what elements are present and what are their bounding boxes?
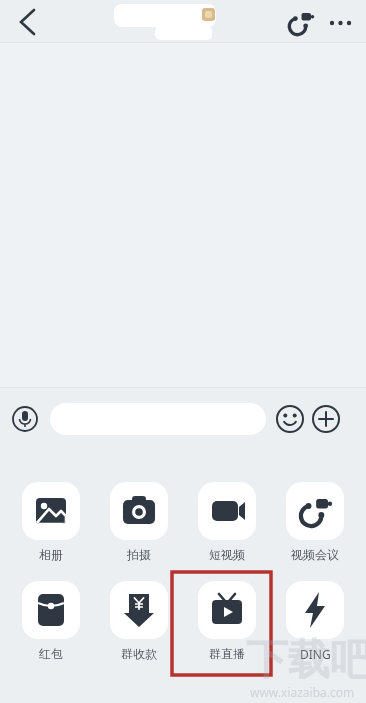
button[interactable] (286, 581, 344, 639)
staticText: 拍摄 (127, 547, 151, 562)
button[interactable]: 群直播 (198, 646, 256, 661)
staticText: 群收款 (121, 646, 157, 661)
staticText: DING (300, 646, 331, 662)
button[interactable] (286, 482, 344, 540)
button[interactable] (284, 5, 318, 39)
staticText: www.xiazaiba.com (250, 684, 355, 700)
button[interactable] (198, 482, 256, 540)
button[interactable] (312, 405, 340, 433)
button[interactable] (198, 581, 256, 639)
staticText: 群直播 (209, 646, 245, 661)
button[interactable]: DING (286, 646, 344, 662)
staticText: 红包 (39, 646, 63, 661)
button[interactable]: 相册 (22, 547, 80, 562)
staticText: 下载吧 (246, 634, 366, 687)
staticText: 短视频 (209, 547, 245, 562)
button[interactable] (22, 581, 80, 639)
button[interactable]: 红包 (22, 646, 80, 661)
button[interactable] (12, 6, 44, 38)
button[interactable]: 视频会议 (286, 547, 344, 562)
staticText: 相册 (39, 547, 63, 562)
button[interactable]: 短视频 (198, 547, 256, 562)
button[interactable] (12, 406, 38, 432)
staticText: 视频会议 (291, 547, 339, 562)
button[interactable]: 拍摄 (110, 547, 168, 562)
button[interactable] (110, 482, 168, 540)
button[interactable] (326, 7, 356, 37)
button[interactable] (22, 482, 80, 540)
button[interactable] (276, 405, 304, 433)
button[interactable]: 群收款 (110, 646, 168, 661)
button[interactable] (50, 403, 266, 435)
button[interactable] (110, 581, 168, 639)
